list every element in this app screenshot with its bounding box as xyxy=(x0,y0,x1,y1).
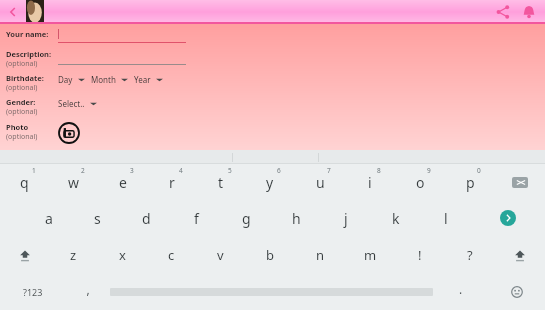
button[interactable] xyxy=(58,49,186,65)
staticText: (optional) xyxy=(6,59,38,69)
button[interactable]: Backspace xyxy=(495,164,545,200)
button[interactable]: r xyxy=(147,164,196,200)
staticText: a xyxy=(45,209,53,228)
staticText: p xyxy=(466,173,475,192)
button[interactable]: i xyxy=(345,164,395,200)
button[interactable]: z xyxy=(49,236,98,273)
button[interactable] xyxy=(58,29,186,43)
button[interactable]: n xyxy=(295,236,345,273)
button[interactable]: ? xyxy=(445,236,495,273)
staticText: l xyxy=(444,209,448,228)
button[interactable]: e xyxy=(98,164,147,200)
staticText: 9 xyxy=(427,166,431,175)
button[interactable]: Share xyxy=(493,2,513,22)
staticText: w xyxy=(68,173,80,192)
button[interactable]: Year xyxy=(134,74,169,85)
staticText: Gender: xyxy=(6,97,36,107)
staticText: h xyxy=(292,209,301,228)
button[interactable]: c xyxy=(147,236,196,273)
staticText: 6 xyxy=(277,166,281,175)
button[interactable]: x xyxy=(98,236,147,273)
button[interactable]: Shift xyxy=(495,236,545,273)
staticText: o xyxy=(416,173,425,192)
staticText: z xyxy=(70,246,77,264)
staticText: s xyxy=(94,209,101,228)
button[interactable]: Day xyxy=(58,74,91,85)
button[interactable]: a xyxy=(24,200,73,236)
staticText: i xyxy=(368,173,372,192)
staticText: m xyxy=(364,246,377,264)
button[interactable]: o xyxy=(395,164,445,200)
button[interactable]: b xyxy=(245,236,295,273)
staticText: . xyxy=(459,281,463,297)
staticText: 5 xyxy=(228,166,232,175)
button[interactable]: Space xyxy=(110,281,433,302)
staticText: Your name: xyxy=(6,29,49,39)
button[interactable]: Enter xyxy=(471,200,545,236)
staticText: (optional) xyxy=(6,83,38,93)
button[interactable]: ! xyxy=(395,236,445,273)
button[interactable]: y xyxy=(245,164,295,200)
staticText: (optional) xyxy=(6,107,38,117)
staticText: 1 xyxy=(32,166,36,175)
staticText: 3 xyxy=(130,166,134,175)
button[interactable]: d xyxy=(122,200,171,236)
staticText: y xyxy=(266,173,274,192)
button[interactable]: k xyxy=(371,200,421,236)
staticText: r xyxy=(169,173,175,192)
button[interactable]: Profile photo xyxy=(26,0,44,24)
button[interactable]: j xyxy=(321,200,371,236)
button[interactable]: Select.. xyxy=(58,98,103,109)
staticText: (optional) xyxy=(6,132,38,142)
staticText: q xyxy=(20,173,29,192)
staticText: ?123 xyxy=(23,286,43,298)
button[interactable]: Back xyxy=(4,3,22,21)
button[interactable]: , xyxy=(65,273,110,310)
staticText: x xyxy=(119,246,126,264)
staticText: ! xyxy=(418,246,422,264)
staticText: 7 xyxy=(327,166,331,175)
button[interactable]: w xyxy=(49,164,98,200)
staticText: Description: xyxy=(6,49,52,59)
button[interactable]: . xyxy=(433,273,489,310)
button[interactable]: ?123 xyxy=(0,273,65,310)
staticText: v xyxy=(217,246,224,264)
staticText: e xyxy=(119,173,127,192)
button[interactable]: Notifications xyxy=(519,2,539,22)
staticText: ? xyxy=(467,246,473,264)
staticText: f xyxy=(194,209,199,228)
staticText: b xyxy=(266,246,274,264)
button[interactable]: t xyxy=(196,164,245,200)
staticText: Day xyxy=(58,74,73,85)
button[interactable]: l xyxy=(421,200,471,236)
staticText: d xyxy=(142,209,151,228)
staticText: g xyxy=(242,209,251,228)
button[interactable]: f xyxy=(171,200,221,236)
button[interactable]: Emoji xyxy=(489,273,545,310)
staticText: , xyxy=(86,281,90,297)
button[interactable]: q xyxy=(0,164,49,200)
button[interactable]: g xyxy=(221,200,271,236)
button[interactable]: m xyxy=(345,236,395,273)
staticText: Month xyxy=(91,74,116,85)
staticText: 0 xyxy=(477,166,481,175)
staticText: 8 xyxy=(377,166,381,175)
staticText: u xyxy=(316,173,325,192)
staticText: Birthdate: xyxy=(6,73,44,83)
staticText: 2 xyxy=(81,166,85,175)
button[interactable]: p xyxy=(445,164,495,200)
button[interactable]: Month xyxy=(91,74,134,85)
staticText: Select.. xyxy=(58,98,85,109)
staticText: k xyxy=(392,209,400,228)
staticText: 4 xyxy=(179,166,183,175)
staticText: Photo xyxy=(6,122,29,132)
button[interactable]: Add photo xyxy=(58,122,80,144)
staticText: j xyxy=(344,209,348,228)
button[interactable]: v xyxy=(196,236,245,273)
button[interactable]: h xyxy=(271,200,321,236)
button[interactable]: Shift xyxy=(0,236,49,273)
staticText: c xyxy=(168,246,175,264)
button[interactable]: s xyxy=(73,200,122,236)
staticText: n xyxy=(316,246,325,264)
button[interactable]: u xyxy=(295,164,345,200)
